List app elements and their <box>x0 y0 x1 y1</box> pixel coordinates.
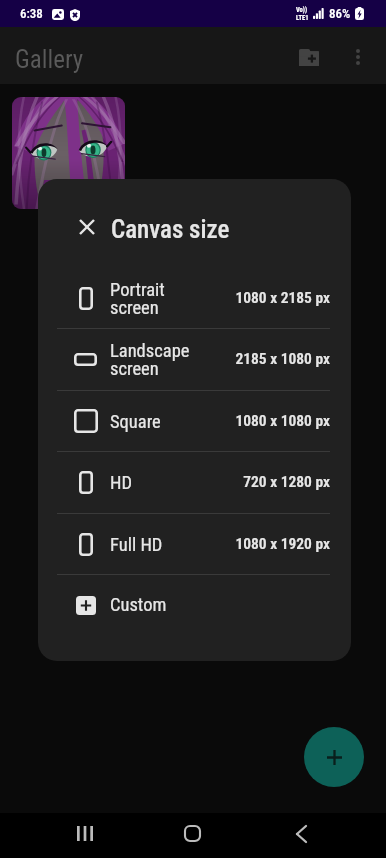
staticText: 1080 x 2185 px <box>235 289 330 307</box>
button[interactable] <box>12 97 125 209</box>
staticText: 6:38 <box>20 6 43 21</box>
staticText: Full HD <box>110 534 163 556</box>
staticText: screen <box>110 358 159 380</box>
staticText: 86% <box>329 6 351 21</box>
button[interactable]: Recent apps <box>62 811 107 856</box>
staticText: screen <box>110 297 159 319</box>
button[interactable]: HD <box>38 451 351 513</box>
staticText: Custom <box>110 594 167 616</box>
button[interactable]: Portrait <box>38 267 351 329</box>
button[interactable]: Close <box>74 214 100 240</box>
staticText: Vo)) <box>296 6 308 14</box>
staticText: 720 x 1280 px <box>243 473 330 491</box>
button[interactable]: More options <box>338 37 378 77</box>
staticText: 2185 x 1080 px <box>235 350 330 368</box>
button[interactable]: New folder <box>289 37 329 77</box>
staticText: Canvas size <box>111 215 230 244</box>
button[interactable]: Custom <box>38 574 351 636</box>
button[interactable]: Square <box>38 390 351 452</box>
staticText: Landscape <box>110 340 190 362</box>
staticText: HD <box>110 472 133 494</box>
staticText: 1080 x 1080 px <box>235 412 330 430</box>
staticText: Portrait <box>110 279 165 301</box>
button[interactable]: Add <box>304 727 364 787</box>
staticText: LTE1 <box>296 14 309 22</box>
button[interactable]: Home <box>170 811 215 856</box>
button[interactable]: Full HD <box>38 513 351 575</box>
staticText: 1080 x 1920 px <box>235 535 330 553</box>
staticText: Square <box>110 411 161 433</box>
button[interactable]: Back <box>279 811 324 856</box>
staticText: Gallery <box>15 45 84 74</box>
button[interactable]: Landscape <box>38 328 351 390</box>
